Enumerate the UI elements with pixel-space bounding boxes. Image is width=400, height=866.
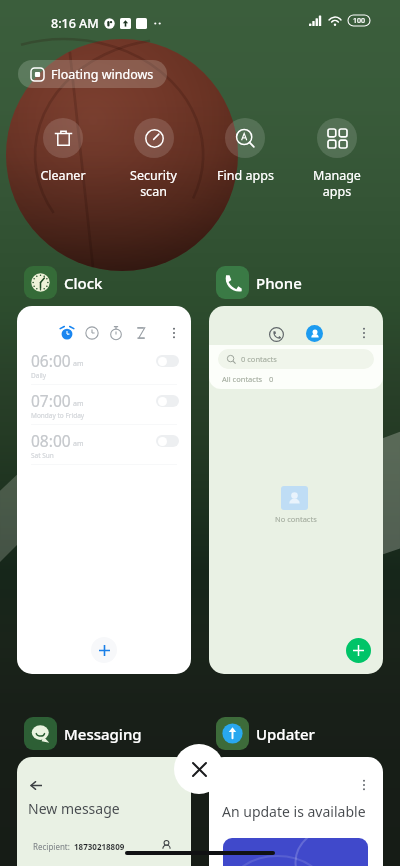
- button[interactable]: 0 contacts: [218, 349, 374, 369]
- button[interactable]: Tab: [106, 323, 126, 343]
- button[interactable]: Toggle alarm: [156, 395, 179, 407]
- button[interactable]: 07:00: [17, 386, 191, 426]
- staticText: Monday to Friday: [31, 411, 85, 420]
- button[interactable]: More options: [357, 778, 371, 792]
- button[interactable]: Back: [27, 776, 45, 794]
- button[interactable]: Updater: [209, 713, 323, 754]
- staticText: 0 contacts: [241, 354, 277, 364]
- button[interactable]: Back: [17, 757, 191, 866]
- button[interactable]: Messaging: [17, 713, 150, 754]
- staticText: Floating windows: [51, 66, 154, 83]
- staticText: am: [73, 439, 84, 449]
- button[interactable]: More options: [167, 326, 181, 340]
- button[interactable]: Cleaner: [17, 118, 108, 184]
- button[interactable]: Tab: [17, 306, 191, 674]
- staticText: 8:16 AM: [51, 15, 99, 32]
- staticText: Find apps: [217, 167, 274, 184]
- staticText: 06:00: [31, 350, 71, 371]
- staticText: All contacts: [222, 374, 263, 384]
- staticText: Phone: [256, 273, 302, 293]
- staticText: New message: [28, 799, 120, 818]
- button[interactable]: All contacts: [209, 370, 383, 388]
- button[interactable]: 06:00: [17, 346, 191, 386]
- button[interactable]: More options: [357, 326, 371, 340]
- button[interactable]: Tab: [82, 323, 102, 343]
- button[interactable]: Manage apps: [291, 118, 383, 199]
- button[interactable]: Add contact: [346, 638, 371, 663]
- staticText: 100: [353, 16, 366, 26]
- button[interactable]: Recents: [209, 306, 383, 674]
- staticText: am: [73, 399, 84, 409]
- staticText: Sat Sun: [31, 451, 54, 460]
- button[interactable]: Find apps: [199, 118, 291, 184]
- button[interactable]: Toggle alarm: [156, 355, 179, 367]
- button[interactable]: Add alarm: [91, 637, 117, 663]
- staticText: An update is available: [222, 802, 366, 821]
- staticText: Manage apps: [313, 167, 361, 199]
- staticText: 07:00: [31, 390, 71, 411]
- button[interactable]: More options: [209, 757, 383, 866]
- staticText: No contacts: [275, 514, 317, 524]
- button[interactable]: Phone: [209, 262, 310, 303]
- staticText: Cleaner: [40, 167, 86, 184]
- button[interactable]: Security scan: [108, 118, 199, 199]
- staticText: Recipient:: [33, 841, 70, 852]
- button[interactable]: Contacts: [306, 325, 323, 342]
- button[interactable]: Tab: [131, 323, 151, 343]
- button[interactable]: Recents: [266, 324, 286, 344]
- button[interactable]: Tab: [57, 323, 77, 343]
- staticText: 18730218809: [74, 841, 125, 852]
- staticText: Security scan: [130, 167, 177, 199]
- staticText: 0: [269, 374, 274, 384]
- button[interactable]: Clock: [17, 262, 111, 303]
- staticText: 08:00: [31, 430, 71, 451]
- staticText: am: [73, 359, 84, 369]
- staticText: Clock: [64, 273, 103, 293]
- staticText: Daily: [31, 371, 47, 380]
- button[interactable]: Toggle alarm: [156, 435, 179, 447]
- button[interactable]: 08:00: [17, 426, 191, 466]
- button[interactable]: Pick contact: [159, 838, 173, 852]
- staticText: Messaging: [64, 724, 142, 744]
- button[interactable]: Close all: [174, 744, 224, 794]
- staticText: Updater: [256, 724, 315, 744]
- button[interactable]: Floating windows: [18, 60, 167, 88]
